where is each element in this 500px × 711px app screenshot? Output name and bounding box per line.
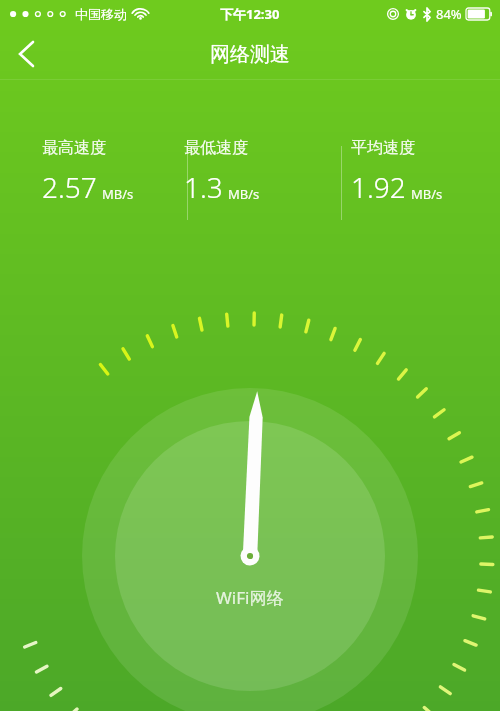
staticText: 最低速度 [184,138,248,158]
staticText: 1.92 [351,168,406,206]
staticText: 2.57 [42,168,97,206]
staticText: 平均速度 [351,138,415,158]
staticText: WiFi网络 [216,586,284,609]
staticText: 下午12:30 [220,5,280,23]
staticText: 84% [436,5,462,23]
staticText: MB/s [228,185,260,203]
button[interactable]: Back [0,28,52,80]
button[interactable]: 平均速度 [333,138,500,224]
staticText: 网络测速 [210,42,290,67]
staticText: MB/s [411,185,443,203]
staticText: 1.3 [184,168,223,206]
button[interactable]: 最高速度 [0,138,166,224]
staticText: 中国移动 [75,6,127,22]
staticText: MB/s [102,185,134,203]
staticText: 最高速度 [42,138,106,158]
button[interactable]: 最低速度 [166,138,333,224]
